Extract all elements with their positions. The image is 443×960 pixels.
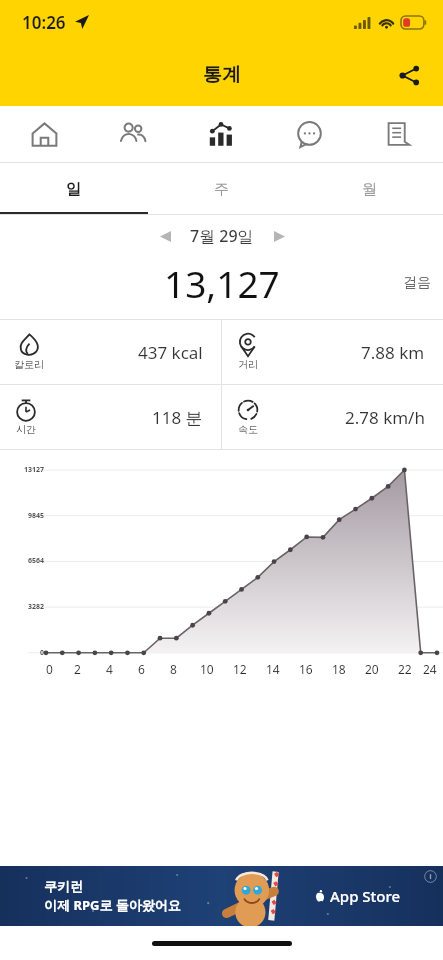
staticText: 16 bbox=[299, 661, 313, 677]
staticText: 이제 RPG로 돌아왔어요 bbox=[44, 896, 181, 914]
staticText: 걸음 bbox=[403, 274, 431, 292]
staticText: 13127 bbox=[0, 465, 44, 475]
button[interactable]: Next day bbox=[262, 219, 296, 253]
staticText: 일 bbox=[66, 180, 81, 199]
staticText: 10:26 bbox=[22, 11, 66, 34]
staticText: 2 bbox=[74, 661, 81, 677]
button[interactable]: 쿠키런 bbox=[0, 866, 443, 926]
staticText: 14 bbox=[266, 661, 280, 677]
button[interactable]: Previous day bbox=[148, 219, 182, 253]
staticText: 거리 bbox=[238, 358, 258, 371]
staticText: 시간 bbox=[16, 423, 36, 436]
staticText: 22 bbox=[398, 661, 412, 677]
staticText: 7월 29일 bbox=[190, 225, 254, 247]
staticText: 437 kcal bbox=[138, 341, 203, 364]
button[interactable]: Chat bbox=[265, 106, 354, 162]
staticText: 9845 bbox=[0, 511, 44, 521]
button[interactable]: 속도 bbox=[222, 385, 443, 449]
staticText: 주 bbox=[214, 180, 229, 199]
staticText: 쿠키런 bbox=[44, 878, 83, 894]
staticText: 0 bbox=[46, 661, 53, 677]
staticText: 8 bbox=[170, 661, 177, 677]
staticText: 10 bbox=[200, 661, 214, 677]
staticText: 6 bbox=[138, 661, 145, 677]
staticText: 13,127 bbox=[164, 258, 280, 308]
staticText: 24 bbox=[423, 661, 437, 677]
button[interactable]: 월 bbox=[295, 163, 443, 215]
staticText: 7.88 km bbox=[361, 341, 425, 364]
button[interactable]: Friends bbox=[88, 106, 176, 162]
staticText: 속도 bbox=[238, 423, 258, 436]
staticText: 통계 bbox=[203, 63, 241, 87]
button[interactable]: 시간 bbox=[0, 385, 221, 449]
button[interactable]: 거리 bbox=[222, 320, 443, 384]
staticText: 12 bbox=[233, 661, 247, 677]
staticText: 월 bbox=[362, 180, 377, 199]
button[interactable]: Statistics bbox=[176, 106, 265, 162]
staticText: 4 bbox=[106, 661, 113, 677]
staticText: 칼로리 bbox=[14, 358, 44, 371]
staticText: 0 bbox=[0, 648, 44, 658]
staticText: 18 bbox=[332, 661, 346, 677]
staticText: 118 분 bbox=[152, 406, 203, 429]
staticText: 3282 bbox=[0, 602, 44, 612]
button[interactable]: Share bbox=[385, 51, 433, 99]
staticText: 6564 bbox=[0, 556, 44, 566]
button[interactable]: 칼로리 bbox=[0, 320, 221, 384]
button[interactable]: 일 bbox=[0, 163, 147, 215]
staticText: App Store bbox=[330, 886, 401, 906]
staticText: 20 bbox=[365, 661, 379, 677]
button[interactable]: Ad info bbox=[424, 870, 437, 883]
button[interactable]: Home bbox=[0, 106, 88, 162]
staticText: 2.78 km/h bbox=[345, 406, 425, 429]
button[interactable]: 주 bbox=[147, 163, 295, 215]
button[interactable]: News bbox=[354, 106, 443, 162]
